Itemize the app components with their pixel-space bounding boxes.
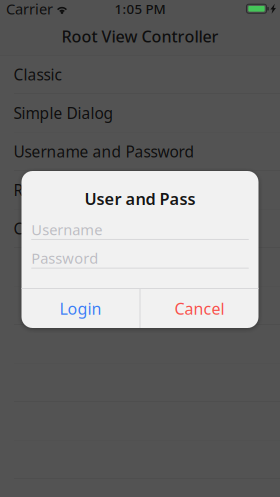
button[interactable]: Classic bbox=[0, 55, 280, 94]
staticText: Username and Password bbox=[14, 141, 195, 162]
staticText: Rating bbox=[14, 179, 63, 201]
staticText: Simple Dialog bbox=[14, 102, 114, 124]
button[interactable] bbox=[0, 286, 280, 325]
button[interactable]: Simple Dialog bbox=[0, 94, 280, 132]
button[interactable]: Custom View bbox=[0, 209, 280, 248]
staticText: Password bbox=[31, 248, 98, 268]
staticText: Login bbox=[59, 298, 101, 319]
staticText: Root View Controller bbox=[61, 25, 218, 47]
button[interactable]: Rating bbox=[0, 171, 280, 209]
staticText: Cancel bbox=[174, 298, 224, 319]
button[interactable]: Login bbox=[21, 289, 139, 328]
button[interactable]: Username and Password bbox=[0, 132, 280, 171]
staticText: Carrier bbox=[6, 0, 53, 18]
staticText: Custom View bbox=[14, 218, 107, 239]
button[interactable]: Cancel bbox=[140, 289, 258, 328]
button[interactable] bbox=[0, 325, 280, 363]
staticText: User and Pass bbox=[84, 187, 195, 210]
staticText: 1:05 PM bbox=[114, 0, 165, 18]
staticText: Classic bbox=[14, 64, 62, 85]
staticText: Username bbox=[31, 220, 102, 239]
button[interactable] bbox=[0, 248, 280, 286]
